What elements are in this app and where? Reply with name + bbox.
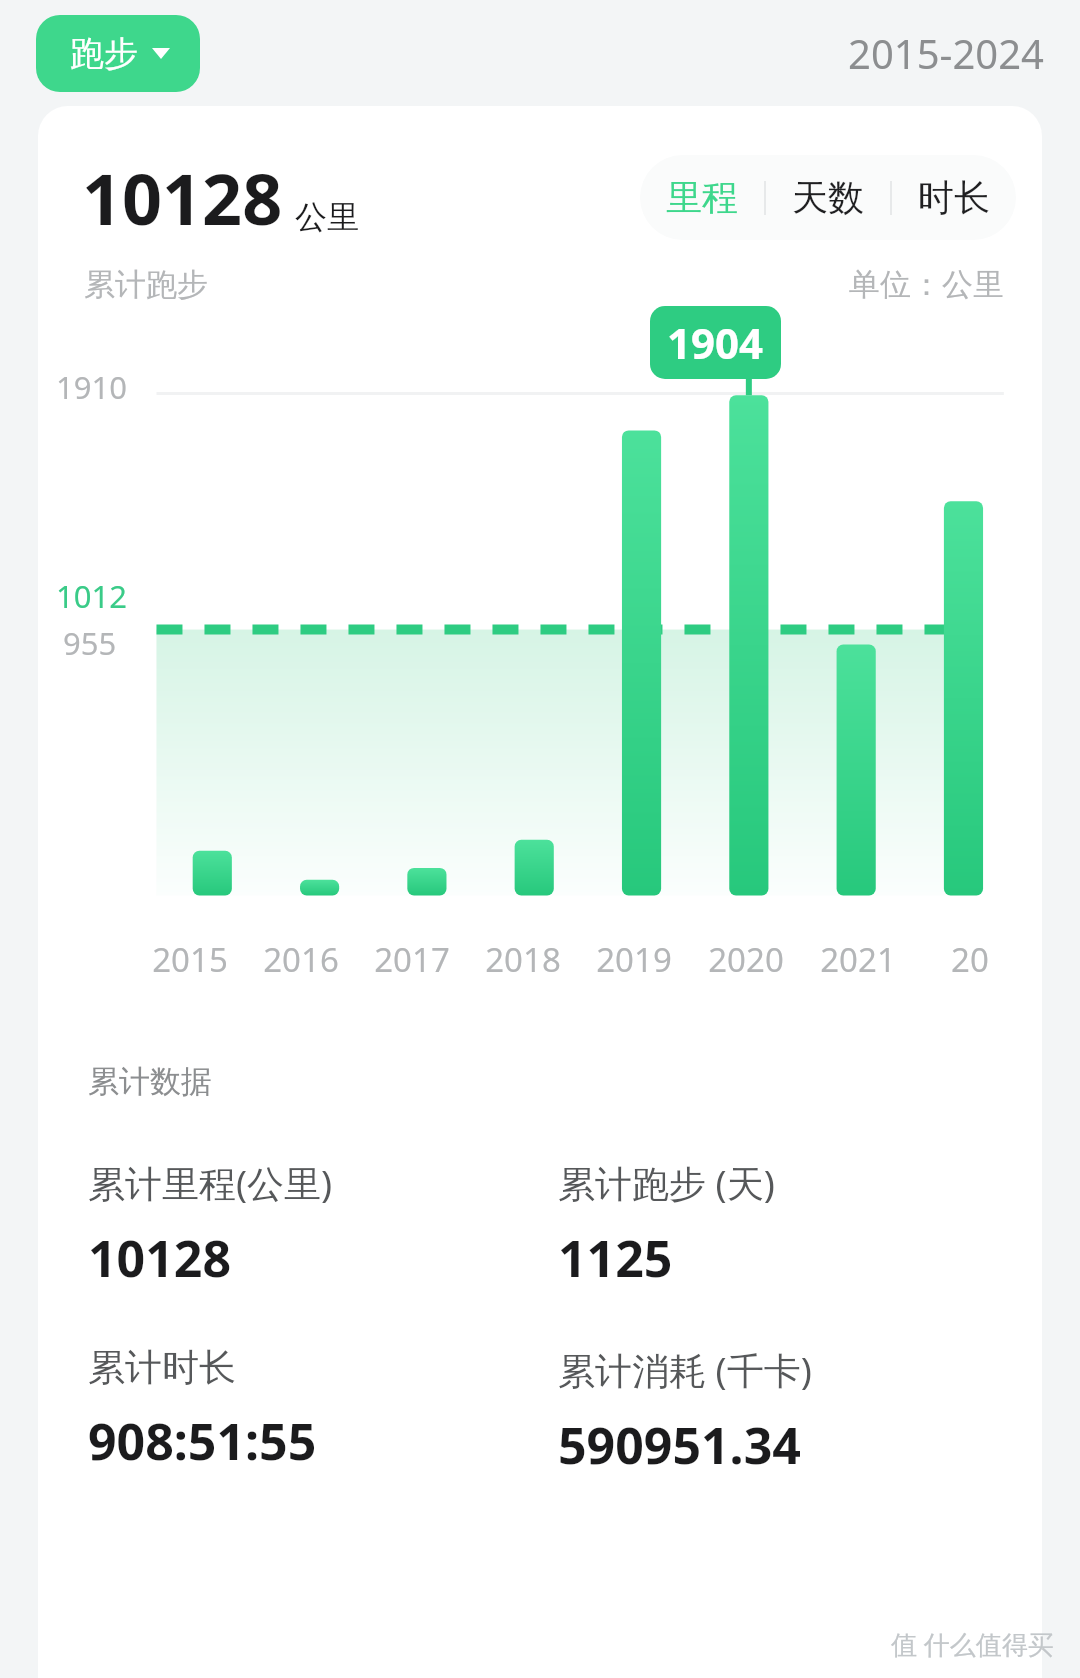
staticText: 2015 (152, 937, 228, 982)
button[interactable]: 1904 (650, 306, 781, 379)
button[interactable]: 天数 (766, 155, 890, 240)
staticText: 20 (951, 937, 989, 982)
staticText: 1904 (667, 314, 764, 371)
button[interactable]: 跑步 (36, 15, 200, 92)
button[interactable]: 里程 (640, 155, 764, 240)
staticText: 单位：公里 (849, 265, 1004, 304)
staticText: 10128 (82, 150, 283, 245)
staticText: 里程 (666, 175, 738, 220)
staticText: 跑步 (70, 32, 138, 75)
staticText: 累计跑步 (84, 265, 208, 304)
staticText: 累计跑步 (天) (558, 1157, 775, 1208)
staticText: 天数 (792, 175, 864, 220)
staticText: 2017 (374, 937, 450, 982)
staticText: 2016 (263, 937, 339, 982)
staticText: 1125 (558, 1224, 673, 1292)
staticText: 公里 (295, 197, 359, 237)
staticText: 590951.34 (558, 1411, 801, 1479)
staticText: 时长 (918, 175, 990, 220)
staticText: 累计消耗 (千卡) (558, 1344, 812, 1395)
staticText: 2021 (820, 937, 896, 982)
staticText: 值 什么值得买 (891, 1626, 1054, 1662)
staticText: 955 (63, 622, 117, 664)
staticText: 1910 (56, 366, 127, 408)
staticText: 累计时长 (88, 1344, 236, 1391)
staticText: 累计里程(公里) (88, 1157, 333, 1208)
staticText: 2019 (596, 937, 672, 982)
button[interactable]: 时长 (892, 155, 1016, 240)
staticText: 1012 (56, 575, 127, 617)
staticText: 2015-2024 (848, 26, 1044, 80)
staticText: 908:51:55 (88, 1407, 317, 1475)
staticText: 10128 (88, 1224, 231, 1292)
staticText: 累计数据 (88, 1062, 212, 1101)
staticText: 2018 (485, 937, 561, 982)
staticText: 2020 (708, 937, 784, 982)
